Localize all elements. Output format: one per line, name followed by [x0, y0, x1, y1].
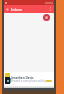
button[interactable] — [46, 80, 52, 82]
button[interactable]: Jonathan Davis — [4, 72, 54, 86]
staticText: Jonathan Davis — [11, 76, 34, 80]
button[interactable]: Compose — [43, 14, 50, 21]
staticText: shared a new photo with you — [11, 79, 50, 83]
button[interactable]: Navigate up — [4, 5, 11, 13]
button[interactable]: More options — [48, 5, 53, 13]
staticText: Inbox — [11, 7, 22, 12]
